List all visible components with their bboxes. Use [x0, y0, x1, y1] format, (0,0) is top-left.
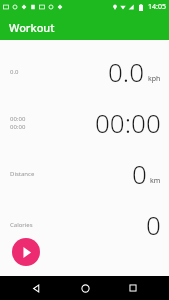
- staticText: Calories: [10, 221, 33, 229]
- staticText: 0: [132, 156, 147, 191]
- button[interactable]: Back: [24, 276, 48, 300]
- staticText: 00:00: [95, 105, 161, 140]
- button[interactable]: Distance: [0, 156, 169, 191]
- button[interactable]: Recent apps: [121, 276, 145, 300]
- button[interactable]: Home: [73, 276, 97, 300]
- staticText: Distance: [10, 170, 35, 178]
- staticText: Workout: [9, 20, 55, 35]
- staticText: 0: [146, 207, 161, 242]
- button[interactable]: 00:00: [0, 105, 169, 140]
- button[interactable]: 0.0: [0, 54, 169, 89]
- staticText: km: [150, 176, 161, 186]
- staticText: 0.0: [108, 54, 145, 89]
- button[interactable]: Start workout: [12, 238, 40, 266]
- staticText: 0.0: [10, 68, 19, 76]
- button[interactable]: Calories: [0, 207, 169, 242]
- staticText: 00:00: [10, 115, 26, 123]
- staticText: 14:05: [148, 2, 166, 12]
- staticText: 00:00: [10, 123, 26, 131]
- staticText: kph: [148, 74, 161, 84]
